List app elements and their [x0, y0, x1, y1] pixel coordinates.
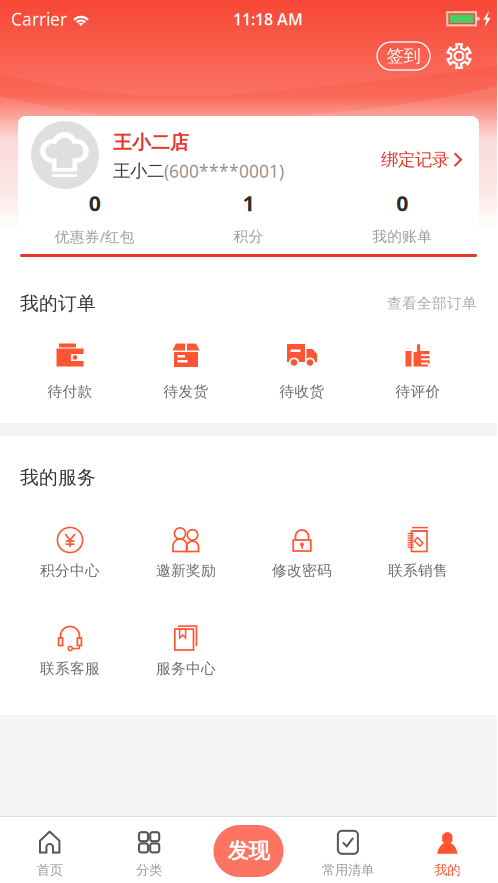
button[interactable]: 邀新奖励: [128, 516, 244, 578]
staticText: 0: [89, 189, 101, 217]
button[interactable]: 0: [18, 194, 172, 244]
staticText: 联系销售: [388, 561, 448, 579]
button[interactable]: 发现: [199, 825, 298, 883]
staticText: 我的: [434, 862, 460, 878]
button[interactable]: 待收货: [244, 340, 360, 399]
staticText: 常用清单: [322, 862, 374, 878]
button[interactable]: 联系销售: [360, 516, 476, 578]
staticText: 我的服务: [20, 466, 96, 489]
button[interactable]: 分类: [99, 830, 199, 878]
staticText: 邀新奖励: [156, 561, 216, 579]
button[interactable]: 积分中心: [12, 516, 128, 578]
button[interactable]: 联系客服: [12, 614, 128, 676]
button[interactable]: 我的: [398, 830, 497, 878]
button[interactable]: 0: [325, 194, 479, 244]
staticText: 发现: [227, 838, 269, 864]
staticText: 待收货: [279, 382, 324, 400]
button[interactable]: 首页: [0, 830, 99, 878]
staticText: 我的账单: [372, 227, 432, 245]
staticText: 我的订单: [20, 292, 96, 315]
staticText: (600****0001): [164, 159, 284, 182]
staticText: Carrier: [11, 7, 67, 30]
staticText: 积分中心: [40, 561, 100, 579]
button[interactable]: 待付款: [12, 340, 128, 399]
staticText: 王小二: [113, 160, 164, 182]
button[interactable]: 1: [172, 194, 325, 244]
button[interactable]: Settings: [430, 43, 472, 69]
staticText: 王小二店: [113, 131, 189, 154]
staticText: 待评价: [395, 382, 440, 400]
staticText: 查看全部订单: [387, 294, 477, 312]
button[interactable]: 常用清单: [298, 830, 398, 878]
button[interactable]: 查看全部订单: [387, 294, 477, 312]
staticText: 服务中心: [156, 659, 216, 677]
button[interactable]: 签到: [377, 42, 430, 70]
staticText: 11:18 AM: [233, 8, 303, 30]
staticText: 联系客服: [40, 659, 100, 677]
staticText: 0: [396, 189, 408, 217]
staticText: 首页: [37, 862, 63, 878]
staticText: 修改密码: [272, 561, 332, 579]
button[interactable]: 绑定记录: [381, 116, 463, 170]
staticText: 积分: [233, 227, 263, 245]
staticText: 绑定记录: [381, 149, 449, 170]
button[interactable]: 服务中心: [128, 614, 244, 676]
staticText: 1: [242, 189, 254, 217]
staticText: 待付款: [47, 382, 92, 400]
button[interactable]: 修改密码: [244, 516, 360, 578]
button[interactable]: 待评价: [360, 340, 476, 399]
staticText: 待发货: [163, 382, 208, 400]
staticText: 优惠券/红包: [55, 227, 135, 246]
staticText: 签到: [386, 45, 420, 67]
button[interactable]: 待发货: [128, 340, 244, 399]
staticText: 分类: [136, 862, 162, 878]
